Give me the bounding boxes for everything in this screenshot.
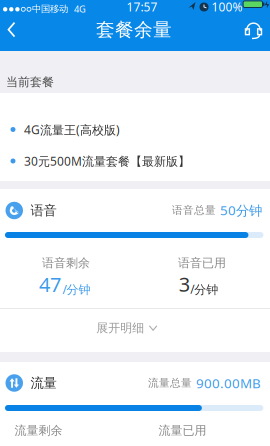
staticText: 3	[179, 271, 190, 297]
staticText: 4G流量王(高校版)	[24, 121, 120, 137]
staticText: /分钟	[62, 281, 90, 297]
staticText: 流量已用	[159, 423, 207, 438]
staticText: 语音总量	[172, 204, 216, 217]
button[interactable]: Back	[8, 23, 14, 37]
staticText: 流量	[30, 375, 56, 391]
staticText: 当前套餐	[6, 75, 54, 89]
staticText: 17:57	[126, 0, 157, 15]
staticText: 50分钟	[220, 201, 262, 219]
staticText: 语音已用	[178, 256, 226, 270]
staticText: 900.00MB	[196, 374, 261, 392]
staticText: /分钟	[190, 281, 218, 297]
staticText: 语音剩余	[42, 256, 90, 270]
staticText: 流量剩余	[14, 423, 62, 438]
staticText: 中国移动	[32, 3, 68, 15]
staticText: 100%	[211, 0, 242, 15]
staticText: 47	[39, 271, 61, 297]
staticText: 展开明细	[96, 321, 144, 335]
button[interactable]: 展开明细	[96, 321, 157, 335]
staticText: 流量总量	[148, 376, 192, 389]
staticText: 30元500M流量套餐【最新版】	[24, 153, 190, 169]
staticText: 4G	[74, 3, 86, 15]
staticText: 语音	[30, 202, 56, 219]
button[interactable]: Customer service	[245, 22, 261, 38]
staticText: 套餐余量	[96, 18, 172, 41]
